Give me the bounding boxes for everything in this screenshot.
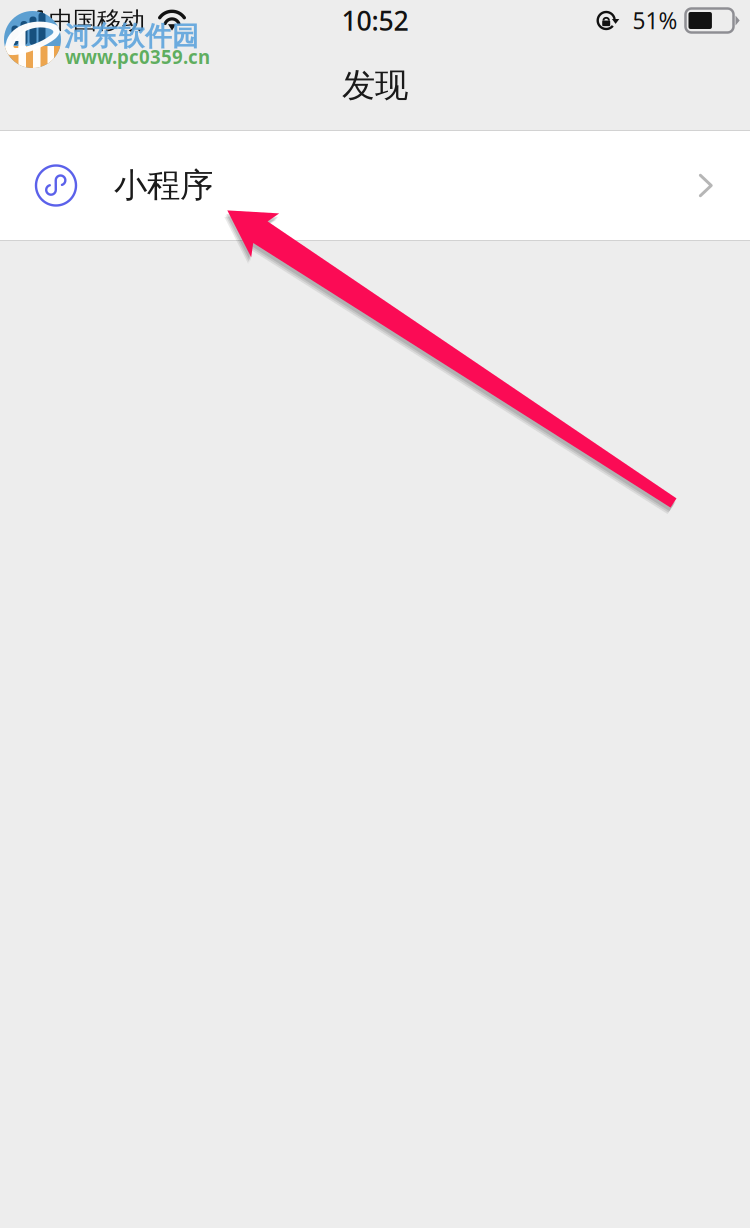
staticText: 小程序 — [114, 165, 213, 206]
staticText: 河东软件园 — [64, 20, 199, 53]
staticText: 发现 — [342, 65, 408, 106]
staticText: www.pc0359.cn — [65, 44, 210, 69]
staticText: 中国移动 — [49, 6, 145, 35]
button[interactable]: 小程序 — [0, 131, 750, 240]
staticText: 10:52 — [341, 3, 408, 38]
staticText: 51% — [632, 5, 677, 35]
